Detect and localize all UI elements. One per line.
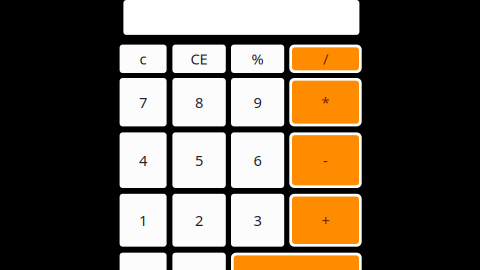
staticText: / [323,49,328,69]
button[interactable]: + [289,194,362,247]
button[interactable]: 2 [172,194,226,247]
button[interactable]: . [172,253,226,270]
button[interactable]: 4 [120,132,167,188]
button[interactable]: 5 [172,132,226,188]
button[interactable]: 7 [120,78,167,126]
button[interactable]: * [289,78,362,126]
button[interactable]: 8 [172,78,226,126]
staticText: CE [191,49,208,69]
button[interactable]: 0 [120,253,167,270]
staticText: 1 [139,210,147,230]
button[interactable]: c [120,45,167,73]
button[interactable]: 6 [231,132,284,188]
button[interactable]: 1 [120,194,167,247]
button[interactable]: % [231,45,284,73]
staticText: + [321,210,329,230]
staticText: 6 [254,150,262,170]
staticText: 5 [195,150,203,170]
button[interactable]: 3 [231,194,284,247]
staticText: % [252,49,264,69]
button[interactable]: 9 [231,78,284,126]
staticText: 3 [254,210,262,230]
staticText: 7 [139,92,147,112]
button[interactable]: = [231,253,362,270]
staticText: 8 [195,92,203,112]
staticText: 4 [139,150,147,170]
button[interactable]: / [289,45,362,73]
button[interactable]: CE [172,45,226,73]
button[interactable]: - [289,132,362,188]
staticText: 2 [195,210,203,230]
staticText: c [140,49,147,69]
staticText: - [323,150,328,170]
staticText: 9 [254,92,262,112]
staticText: * [321,92,329,112]
